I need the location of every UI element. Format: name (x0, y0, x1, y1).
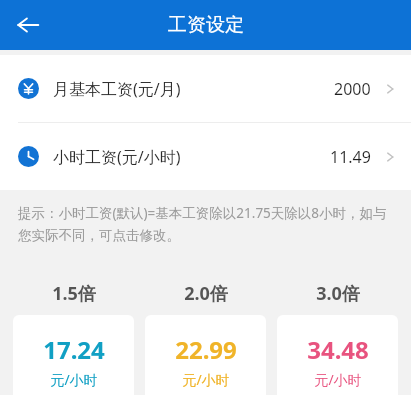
staticText: 月基本工资(元/月) (53, 78, 181, 100)
button[interactable]: 小时工资(元/小时) (0, 123, 411, 190)
staticText: 17.24 (43, 333, 105, 366)
staticText: 元/小时 (182, 370, 230, 389)
staticText: 工资设定 (168, 13, 244, 37)
staticText: 34.48 (307, 333, 369, 366)
staticText: 2.0倍 (184, 281, 228, 306)
button[interactable]: 22.99 (145, 315, 266, 395)
staticText: 3.0倍 (316, 281, 360, 306)
staticText: 元/小时 (314, 370, 362, 389)
button[interactable]: 17.24 (13, 315, 134, 395)
button[interactable]: Back (6, 3, 50, 47)
staticText: 22.99 (175, 333, 237, 366)
staticText: 11.49 (330, 146, 371, 168)
staticText: 1.5倍 (52, 281, 96, 306)
button[interactable]: 34.48 (277, 315, 398, 395)
staticText: 元/小时 (50, 370, 98, 389)
staticText: 2000 (334, 78, 371, 100)
staticText: 提示：小时工资(默认)=基本工资除以21.75天除以8小时，如与您实际不同，可点… (18, 204, 395, 244)
button[interactable]: 月基本工资(元/月) (0, 55, 411, 122)
staticText: 小时工资(元/小时) (53, 146, 181, 168)
